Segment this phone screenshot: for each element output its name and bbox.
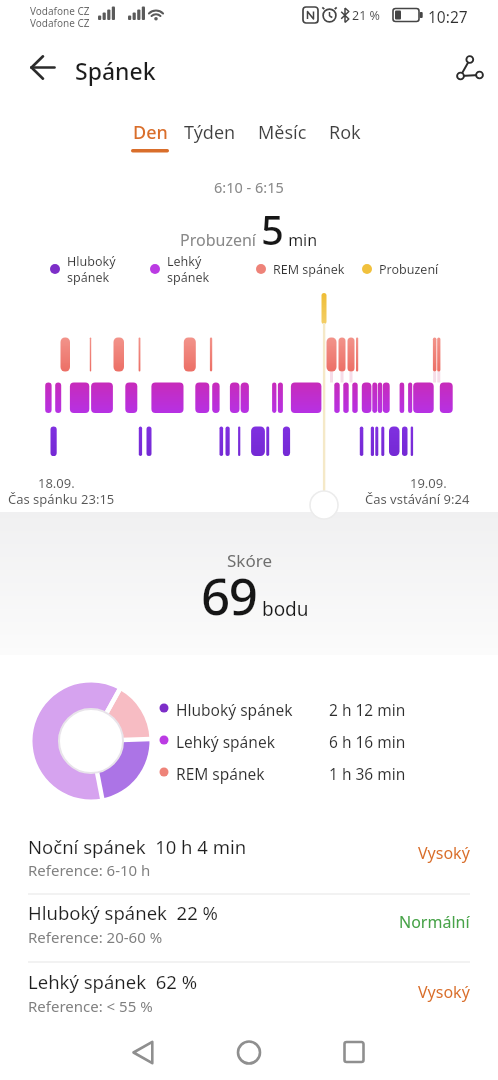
staticText: Probuzení bbox=[180, 229, 261, 251]
staticText: Hluboký spánek bbox=[176, 699, 293, 720]
staticText: spánek bbox=[167, 269, 210, 286]
staticText: Vysoký bbox=[418, 842, 470, 864]
staticText: Noční spánek 10 h 4 min bbox=[28, 834, 247, 859]
staticText: Den bbox=[133, 120, 168, 145]
button[interactable] bbox=[18, 52, 62, 86]
button[interactable]: Hluboký spánek 22 % bbox=[0, 895, 498, 962]
staticText: 6:10 - 6:15 bbox=[214, 177, 284, 197]
staticText: Čas spánku 23:15 bbox=[8, 490, 115, 508]
staticText: Hluboký bbox=[67, 253, 116, 270]
staticText: spánek bbox=[67, 269, 110, 286]
staticText: Lehký bbox=[167, 253, 202, 270]
staticText: REM spánek bbox=[176, 763, 265, 784]
button[interactable] bbox=[216, 1030, 282, 1076]
button[interactable] bbox=[448, 48, 492, 88]
staticText: Hluboký spánek 22 % bbox=[28, 900, 218, 925]
staticText: 10:27 bbox=[428, 6, 468, 27]
staticText: Lehký spánek bbox=[176, 731, 275, 752]
button[interactable]: Týden bbox=[183, 116, 237, 154]
staticText: Spánek bbox=[75, 55, 156, 86]
staticText: 19.09. bbox=[410, 474, 447, 492]
button[interactable]: Rok bbox=[318, 116, 372, 154]
staticText: Skóre bbox=[227, 549, 272, 572]
staticText: Reference: < 55 % bbox=[28, 996, 153, 1016]
staticText: REM spánek bbox=[273, 261, 345, 278]
button[interactable]: Noční spánek 10 h 4 min bbox=[0, 828, 498, 894]
button[interactable]: Lehký spánek 62 % bbox=[0, 963, 498, 1023]
staticText: 18.09. bbox=[38, 474, 75, 492]
staticText: Rok bbox=[329, 120, 361, 145]
button[interactable] bbox=[110, 1030, 176, 1076]
staticText: min bbox=[284, 229, 318, 251]
staticText: Měsíc bbox=[258, 120, 307, 145]
button[interactable]: Den bbox=[123, 116, 177, 154]
staticText: Vysoký bbox=[418, 981, 470, 1003]
staticText: Vodafone CZ bbox=[30, 4, 90, 18]
staticText: 1 h 36 min bbox=[329, 763, 406, 784]
staticText: Vodafone CZ bbox=[30, 16, 90, 30]
staticText: 5 bbox=[261, 202, 284, 256]
staticText: Reference: 20-60 % bbox=[28, 927, 163, 947]
staticText: 69 bbox=[201, 560, 257, 629]
staticText: Reference: 6-10 h bbox=[28, 860, 151, 880]
staticText: Týden bbox=[184, 120, 236, 145]
staticText: 6 h 16 min bbox=[329, 731, 406, 752]
staticText: 2 h 12 min bbox=[329, 699, 406, 720]
staticText: 21 % bbox=[352, 7, 380, 24]
button[interactable] bbox=[322, 1030, 388, 1076]
staticText: Lehký spánek 62 % bbox=[28, 969, 198, 994]
staticText: bodu bbox=[257, 596, 309, 622]
staticText: Čas vstávání 9:24 bbox=[365, 490, 470, 508]
staticText: Probuzení bbox=[379, 261, 439, 278]
staticText: Normální bbox=[399, 911, 470, 933]
button[interactable]: Měsíc bbox=[255, 116, 309, 154]
